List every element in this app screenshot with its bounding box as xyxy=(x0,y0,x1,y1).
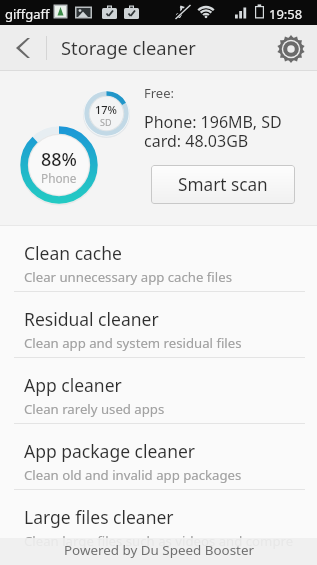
staticText: Clean app and system residual files xyxy=(24,334,242,352)
staticText: SD xyxy=(100,116,112,128)
staticText: Smart scan xyxy=(178,173,268,196)
staticText: 88% xyxy=(41,147,77,172)
staticText: Large files cleaner xyxy=(24,505,174,529)
button[interactable]: Residual cleaner xyxy=(0,292,317,357)
staticText: 19:58 xyxy=(269,5,303,23)
button[interactable]: Back xyxy=(0,25,46,70)
button[interactable]: Large files cleaner xyxy=(0,490,317,555)
staticText: giffgaff xyxy=(5,5,50,23)
staticText: Storage cleaner xyxy=(61,35,196,60)
staticText: Free: xyxy=(144,84,175,102)
staticText: Phone: 196MB, SD card: 48.03GB xyxy=(144,111,286,152)
staticText: Phone xyxy=(41,170,77,186)
staticText: Residual cleaner xyxy=(24,307,159,331)
staticText: Clear unnecessary app cache files xyxy=(24,268,232,286)
staticText: Clean rarely used apps xyxy=(24,400,165,418)
staticText: 17% xyxy=(95,102,117,117)
button[interactable]: Clean cache xyxy=(0,226,317,291)
staticText: Clean old and invalid app packages xyxy=(24,466,242,484)
button[interactable]: Settings xyxy=(267,25,317,70)
button[interactable]: Smart scan xyxy=(151,165,295,204)
staticText: Clean cache xyxy=(24,241,122,265)
staticText: Powered by Du Speed Booster xyxy=(64,541,254,559)
button[interactable]: App cleaner xyxy=(0,358,317,423)
staticText: App cleaner xyxy=(24,373,122,397)
staticText: App package cleaner xyxy=(24,439,196,463)
button[interactable]: App package cleaner xyxy=(0,424,317,489)
staticText: Clean large files such as videos and com… xyxy=(24,532,294,550)
